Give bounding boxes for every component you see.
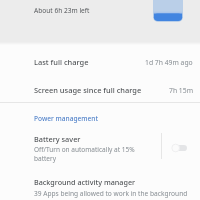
button[interactable]: Battery saver toggle, off	[164, 128, 194, 164]
staticText: Background activity manager	[34, 177, 136, 187]
button[interactable]: Screen usage since full charge	[0, 78, 200, 102]
button[interactable]: Last full charge	[0, 48, 200, 76]
staticText: 7h 15m	[169, 86, 193, 95]
button[interactable]: Power management	[0, 107, 200, 125]
staticText: 1d 7h 49m ago	[145, 58, 193, 67]
staticText: 39 Apps being allowed to work in the bac…	[34, 189, 188, 198]
staticText: Screen usage since full charge	[34, 85, 142, 95]
staticText: Last full charge	[34, 57, 89, 67]
staticText: About 6h 23m left	[34, 6, 90, 15]
staticText: Off/Turn on automatically at 15% battery	[34, 145, 138, 162]
staticText: Power management	[34, 114, 99, 123]
button[interactable]: Background activity manager	[0, 177, 200, 198]
staticText: Battery saver	[34, 134, 81, 144]
button[interactable]: Battery saver	[0, 128, 200, 164]
button[interactable]: About 6h 23m left	[0, 0, 200, 45]
